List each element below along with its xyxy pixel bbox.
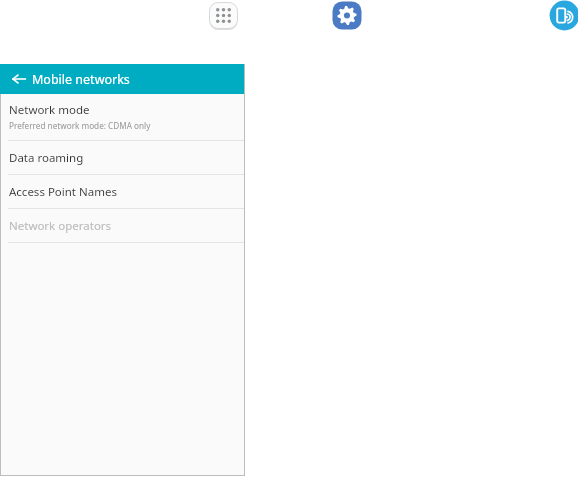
button[interactable]: Back	[10, 70, 28, 88]
staticText: Preferred network mode: CDMA only	[9, 120, 151, 131]
staticText: Mobile networks	[32, 71, 130, 88]
button[interactable]: Network mode	[0, 94, 245, 140]
button[interactable]: Apps	[207, 0, 240, 31]
staticText: Data roaming	[9, 150, 84, 166]
button[interactable]: Network operators	[0, 209, 245, 242]
button[interactable]: Settings	[331, 0, 363, 31]
button[interactable]: Access Point Names	[0, 175, 245, 208]
staticText: Access Point Names	[9, 184, 117, 200]
button[interactable]: Mobile networks	[549, 0, 578, 31]
button[interactable]: Data roaming	[0, 141, 245, 174]
staticText: Network operators	[9, 218, 112, 234]
staticText: Network mode	[9, 102, 90, 118]
